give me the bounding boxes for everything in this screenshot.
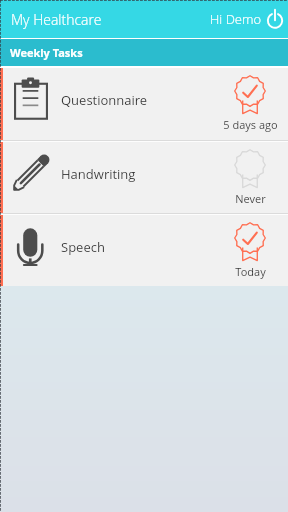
staticText: Weekly Tasks (10, 45, 83, 60)
staticText: Today (235, 264, 266, 279)
staticText: 5 days ago (223, 117, 278, 132)
staticText: Questionnaire (61, 91, 148, 109)
staticText: My Healthcare (11, 10, 102, 29)
staticText: Speech (61, 238, 105, 256)
staticText: Never (235, 191, 266, 206)
button[interactable]: Log out (265, 9, 285, 29)
staticText: Hi Demo (210, 10, 262, 28)
button[interactable]: Questionnaire (0, 68, 288, 140)
button[interactable]: Handwriting (0, 142, 288, 213)
staticText: Handwriting (61, 165, 136, 183)
button[interactable]: Speech (0, 215, 288, 286)
